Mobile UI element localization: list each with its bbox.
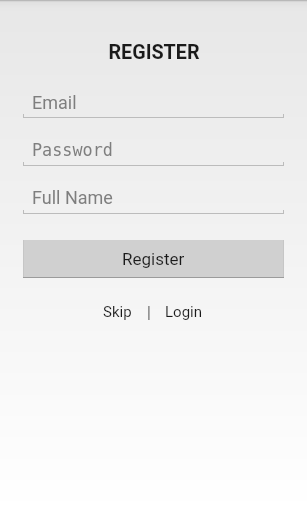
button[interactable]: Login — [165, 303, 202, 321]
staticText: Register — [122, 249, 185, 269]
staticText: Email — [32, 92, 77, 113]
staticText: Skip — [103, 303, 132, 321]
staticText: REGISTER — [108, 41, 200, 64]
button[interactable]: Skip — [103, 303, 132, 321]
button[interactable]: Email — [23, 92, 284, 121]
button[interactable]: Full Name — [23, 188, 284, 217]
button[interactable]: Password — [23, 140, 284, 169]
button[interactable]: Register — [23, 240, 284, 278]
staticText: Login — [165, 303, 202, 321]
staticText: Password — [32, 140, 113, 160]
staticText: Full Name — [32, 187, 113, 208]
